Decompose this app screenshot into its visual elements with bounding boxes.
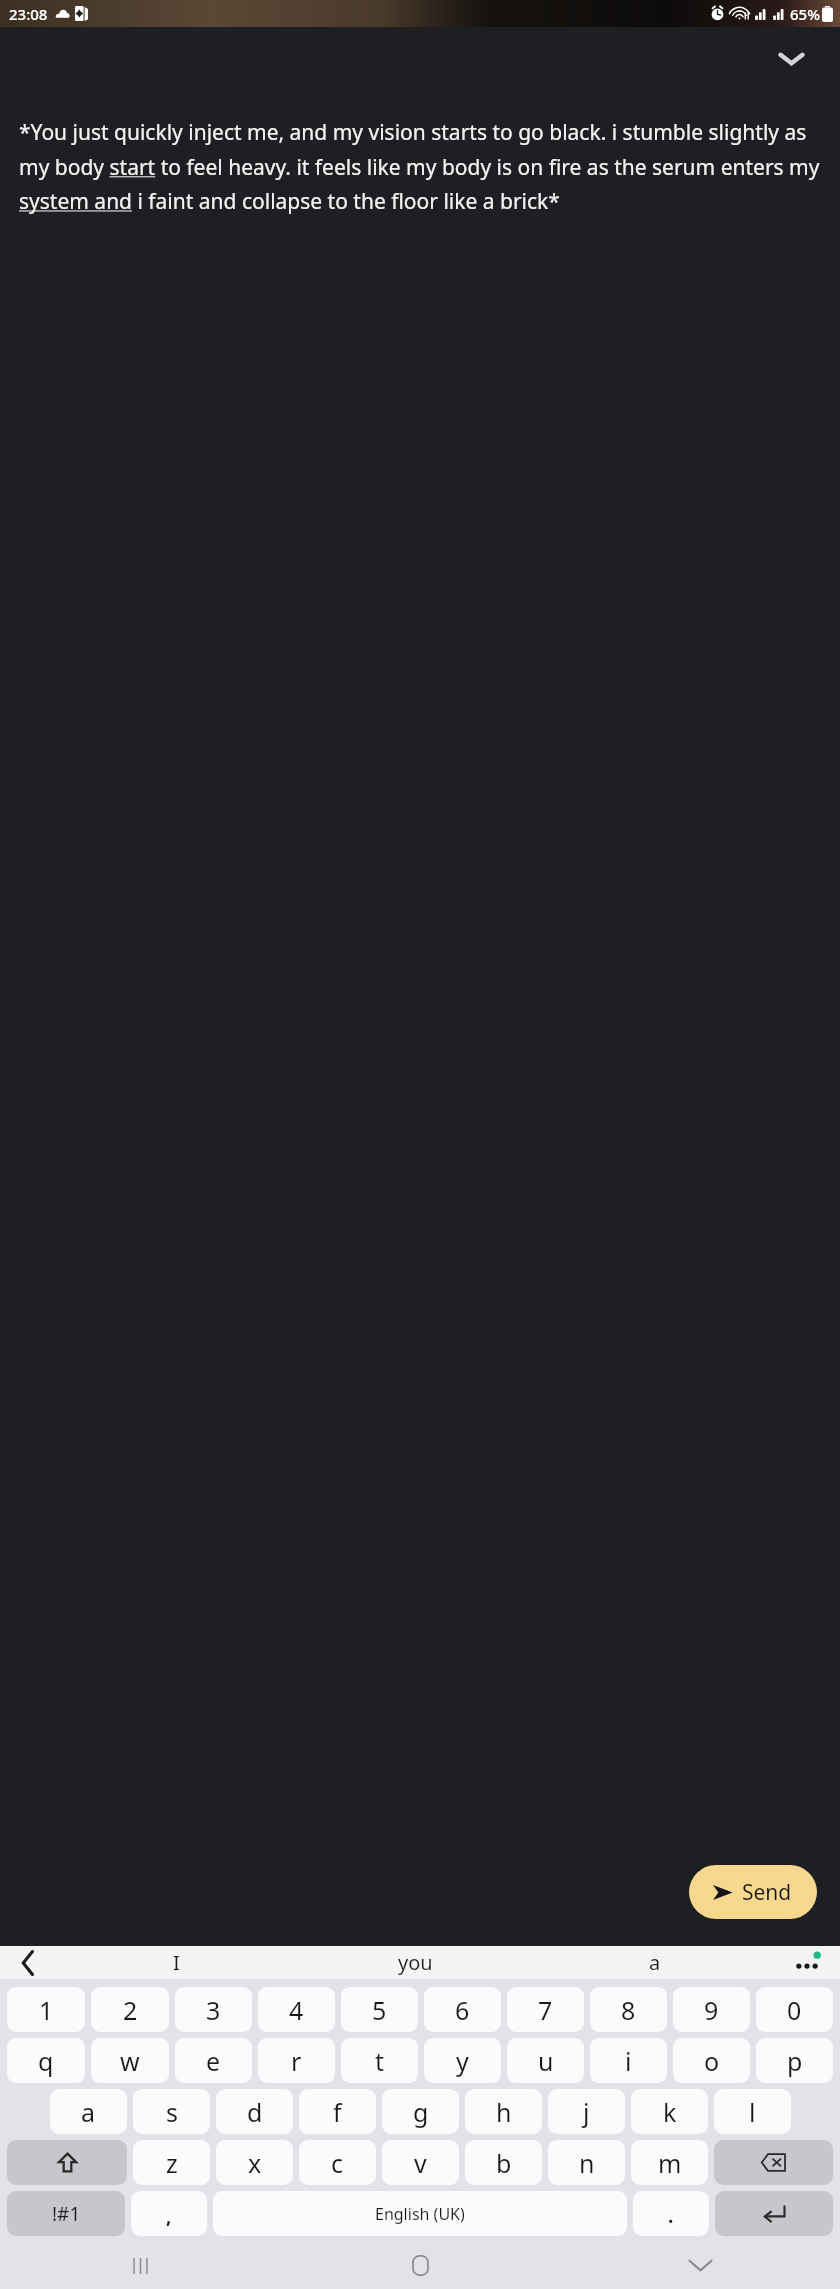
staticText: q [38,2044,54,2078]
staticText: r [291,2044,302,2078]
button[interactable]: Shift [7,2140,127,2185]
button[interactable]: w [91,2038,169,2083]
button[interactable]: 0 [756,1987,833,2032]
button[interactable]: r [258,2038,335,2083]
staticText: . [668,2203,674,2229]
button[interactable]: Recents [0,2242,280,2289]
button[interactable]: c [299,2140,376,2185]
button[interactable]: 6 [424,1987,501,2032]
staticText: f [333,2095,342,2129]
staticText: *You just quickly inject me, and my visi… [19,118,821,215]
staticText: 5 [372,1993,387,2027]
staticText: s [166,2095,178,2129]
button[interactable]: n [548,2140,625,2185]
button[interactable]: Send [689,1865,817,1919]
staticText: 23:08 [9,4,48,24]
button[interactable]: j [548,2089,625,2134]
button[interactable]: b [465,2140,542,2185]
staticText: u [538,2044,554,2078]
button[interactable]: h [465,2089,542,2134]
button[interactable]: l [714,2089,791,2134]
staticText: t [375,2044,385,2078]
button[interactable]: 4 [258,1987,335,2032]
staticText: 0 [787,1993,802,2027]
button[interactable]: f [299,2089,376,2134]
staticText: 6 [455,1993,470,2027]
staticText: h [496,2095,512,2129]
staticText: w [120,2044,140,2078]
button[interactable]: x [216,2140,293,2185]
button[interactable]: m [631,2140,708,2185]
button[interactable]: , [131,2191,207,2236]
button[interactable]: More options [774,1946,840,1979]
staticText: 1 [39,1993,54,2027]
staticText: i [625,2044,632,2078]
staticText: 2 [123,1993,138,2027]
button[interactable]: 8 [590,1987,667,2032]
button[interactable]: Back [0,1946,56,1979]
button[interactable]: z [133,2140,210,2185]
staticText: g [413,2095,429,2129]
button[interactable]: 2 [91,1987,169,2032]
button[interactable]: s [133,2089,210,2134]
staticText: 7 [538,1993,553,2027]
staticText: e [206,2044,221,2078]
staticText: a [649,1949,661,1976]
button[interactable]: v [382,2140,459,2185]
staticText: k [663,2095,677,2129]
button[interactable]: 3 [175,1987,252,2032]
button[interactable]: Collapse [768,36,814,82]
button[interactable]: u [507,2038,584,2083]
button[interactable]: Hide keyboard [560,2242,840,2289]
staticText: , [166,2203,172,2229]
staticText: b [496,2146,512,2180]
staticText: x [248,2146,262,2180]
staticText: d [247,2095,263,2129]
staticText: j [583,2095,590,2129]
button[interactable]: 9 [673,1987,750,2032]
button[interactable]: I [56,1946,296,1979]
button[interactable]: English (UK) [213,2191,627,2236]
button[interactable]: g [382,2089,459,2134]
button[interactable]: Backspace [714,2140,833,2185]
button[interactable]: d [216,2089,293,2134]
button[interactable]: q [7,2038,85,2083]
staticText: y [456,2044,469,2078]
staticText: you [398,1949,433,1976]
button[interactable]: Enter [715,2191,833,2236]
button[interactable]: you [296,1946,535,1979]
button[interactable]: o [673,2038,750,2083]
button[interactable]: Home [280,2242,560,2289]
staticText: 8 [621,1993,636,2027]
staticText: 65% [790,4,820,24]
button[interactable]: i [590,2038,667,2083]
button[interactable]: 7 [507,1987,584,2032]
staticText: m [658,2146,682,2180]
button[interactable]: k [631,2089,708,2134]
staticText: English (UK) [375,2203,465,2225]
button[interactable]: 1 [7,1987,85,2032]
button[interactable]: a [535,1946,774,1979]
staticText: 3 [206,1993,221,2027]
staticText: !#1 [52,2201,81,2227]
button[interactable]: !#1 [7,2191,125,2236]
staticText: I [173,1949,180,1976]
staticText: 9 [704,1993,719,2027]
button[interactable]: e [175,2038,252,2083]
button[interactable]: t [341,2038,418,2083]
staticText: o [704,2044,720,2078]
staticText: v [414,2146,427,2180]
staticText: a [81,2095,96,2129]
staticText: l [749,2095,756,2129]
button[interactable]: a [50,2089,127,2134]
button[interactable]: p [756,2038,833,2083]
staticText: Send [742,1878,792,1907]
staticText: z [166,2146,178,2180]
button[interactable]: 5 [341,1987,418,2032]
button[interactable]: y [424,2038,501,2083]
button[interactable]: . [633,2191,709,2236]
staticText: p [787,2044,803,2078]
staticText: c [331,2146,344,2180]
staticText: 4 [289,1993,304,2027]
staticText: n [579,2146,595,2180]
